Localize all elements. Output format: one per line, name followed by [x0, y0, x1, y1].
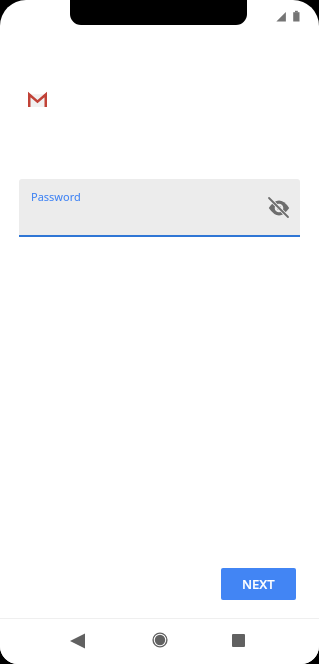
button[interactable]: Back [63, 625, 95, 657]
staticText: NEXT [242, 575, 275, 593]
staticText: Password [31, 189, 81, 204]
button[interactable]: Recent apps [222, 624, 254, 656]
button[interactable]: NEXT [221, 568, 296, 600]
button[interactable]: Show password [261, 190, 297, 226]
button[interactable] [19, 179, 300, 235]
button[interactable]: Home [144, 624, 176, 656]
